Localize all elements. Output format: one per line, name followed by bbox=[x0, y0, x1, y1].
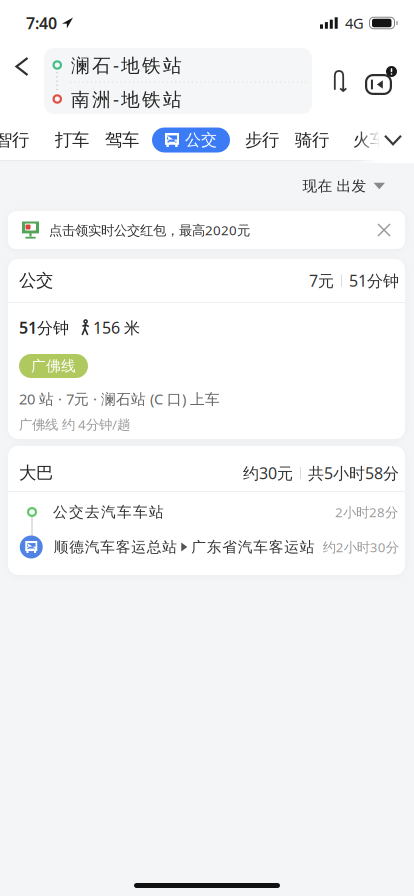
staticText: 广佛线 约 4分钟/趟 bbox=[19, 415, 130, 433]
staticText: 2小时28分 bbox=[335, 503, 398, 521]
button[interactable]: Trip assistant bbox=[363, 65, 397, 95]
staticText: 广东省汽车客运站 bbox=[191, 538, 315, 556]
staticText: 公交 bbox=[19, 270, 53, 291]
staticText: 点击领实时公交红包，最高2020元 bbox=[49, 221, 250, 239]
staticText: 约30元 bbox=[243, 462, 293, 484]
staticText: 20 站 · 7元 · 澜石站 (C 口) 上车 bbox=[19, 389, 220, 408]
staticText: 顺德汽车客运总站 bbox=[54, 538, 177, 556]
staticText: 约2小时30分 bbox=[323, 538, 399, 556]
button[interactable]: More transport modes bbox=[379, 130, 407, 150]
button[interactable]: 驾车 bbox=[105, 129, 139, 151]
staticText: 4G bbox=[345, 13, 364, 33]
staticText: 51分钟 bbox=[349, 270, 399, 291]
button[interactable]: 步行 bbox=[245, 129, 279, 151]
staticText: 步行 bbox=[245, 129, 279, 151]
button[interactable]: 现在 出发 bbox=[302, 167, 414, 205]
button[interactable]: Dismiss banner bbox=[370, 211, 405, 249]
staticText: 公交去汽车车站 bbox=[53, 503, 164, 521]
button[interactable]: Swap start and destination bbox=[326, 65, 352, 97]
staticText: 156 米 bbox=[93, 317, 140, 338]
staticText: 公交 bbox=[185, 130, 217, 150]
button[interactable]: Back bbox=[8, 50, 35, 83]
staticText: 共5小时58分 bbox=[308, 462, 399, 484]
staticText: 驾车 bbox=[105, 129, 139, 151]
staticText: 智行 bbox=[0, 129, 29, 151]
staticText: 骑行 bbox=[295, 129, 329, 151]
staticText: 大巴 bbox=[19, 462, 53, 484]
staticText: 火车 bbox=[353, 129, 387, 151]
button[interactable]: 公交 bbox=[8, 259, 405, 439]
button[interactable]: 智行 bbox=[0, 129, 29, 151]
button[interactable]: 打车 bbox=[55, 129, 89, 151]
button[interactable]: 骑行 bbox=[295, 129, 329, 151]
staticText: 打车 bbox=[55, 129, 89, 151]
staticText: 澜石-地铁站 bbox=[71, 53, 182, 77]
button[interactable]: 大巴 bbox=[8, 446, 405, 575]
staticText: 7元 bbox=[309, 270, 334, 291]
staticText: 7:40 bbox=[26, 12, 57, 34]
staticText: 51分钟 bbox=[19, 317, 69, 338]
button[interactable]: 点击领实时公交红包，最高2020元 bbox=[8, 211, 405, 249]
staticText: 广佛线 bbox=[31, 357, 76, 375]
button[interactable]: 火车 bbox=[353, 129, 387, 151]
staticText: 南洲-地铁站 bbox=[71, 87, 182, 111]
button[interactable]: 澜石-地铁站 bbox=[44, 49, 312, 81]
button[interactable]: 公交 bbox=[152, 127, 230, 152]
button[interactable]: 南洲-地铁站 bbox=[44, 83, 312, 115]
staticText: 现在 出发 bbox=[302, 177, 366, 195]
